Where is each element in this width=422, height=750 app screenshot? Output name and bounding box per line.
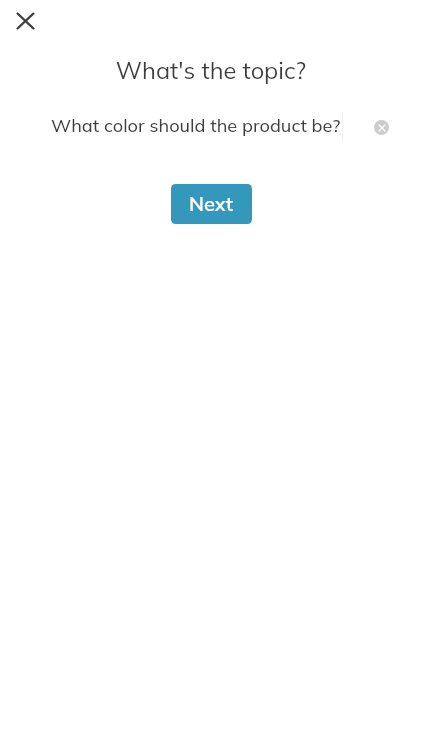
button[interactable]: Next	[171, 184, 252, 224]
button[interactable]: Clear text	[374, 120, 389, 135]
staticText: What's the topic?	[0, 55, 422, 750]
staticText: Next	[189, 191, 233, 216]
button[interactable]: What color should the product be?	[51, 111, 341, 139]
staticText: What color should the product be?	[51, 114, 341, 137]
button[interactable]: Close	[5, 0, 46, 41]
